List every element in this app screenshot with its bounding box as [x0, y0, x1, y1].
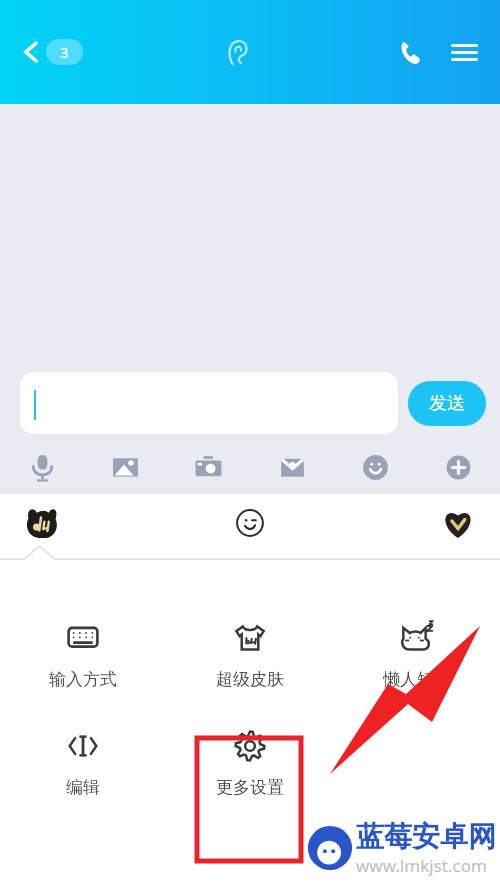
button[interactable]: Call: [388, 30, 432, 74]
button[interactable]: Envelope: [272, 447, 312, 487]
button[interactable]: Emoji: [226, 499, 274, 547]
button[interactable]: 更多设置: [166, 726, 333, 800]
button[interactable]: Baidu input: [18, 499, 66, 547]
staticText: 输入方式: [49, 669, 117, 690]
button[interactable]: More: [438, 447, 478, 487]
button[interactable]: Menu: [442, 30, 486, 74]
button[interactable]: 超级皮肤: [166, 618, 333, 692]
button[interactable]: Listen: [217, 32, 257, 72]
staticText: 超级皮肤: [216, 669, 284, 690]
staticText: www.lmkjst.com: [356, 854, 487, 877]
button[interactable]: Voice: [22, 447, 62, 487]
button[interactable]: Emoji: [355, 447, 395, 487]
staticText: 懒人短语: [383, 669, 451, 690]
button[interactable]: Back, 3 unread: [14, 35, 87, 69]
button[interactable]: Camera: [188, 447, 228, 487]
staticText: 3: [60, 42, 69, 62]
button[interactable]: 编辑: [0, 726, 166, 800]
button[interactable]: Favorites: [434, 499, 482, 547]
button[interactable]: 输入方式: [0, 618, 166, 692]
staticText: 编辑: [66, 777, 100, 798]
button[interactable]: 懒人短语: [333, 618, 500, 692]
button[interactable]: Gallery: [105, 447, 145, 487]
button[interactable]: [20, 372, 398, 434]
button[interactable]: 发送: [408, 381, 486, 426]
staticText: 发送: [429, 392, 465, 415]
staticText: 蓝莓安卓网: [356, 819, 496, 854]
staticText: 更多设置: [216, 777, 284, 798]
